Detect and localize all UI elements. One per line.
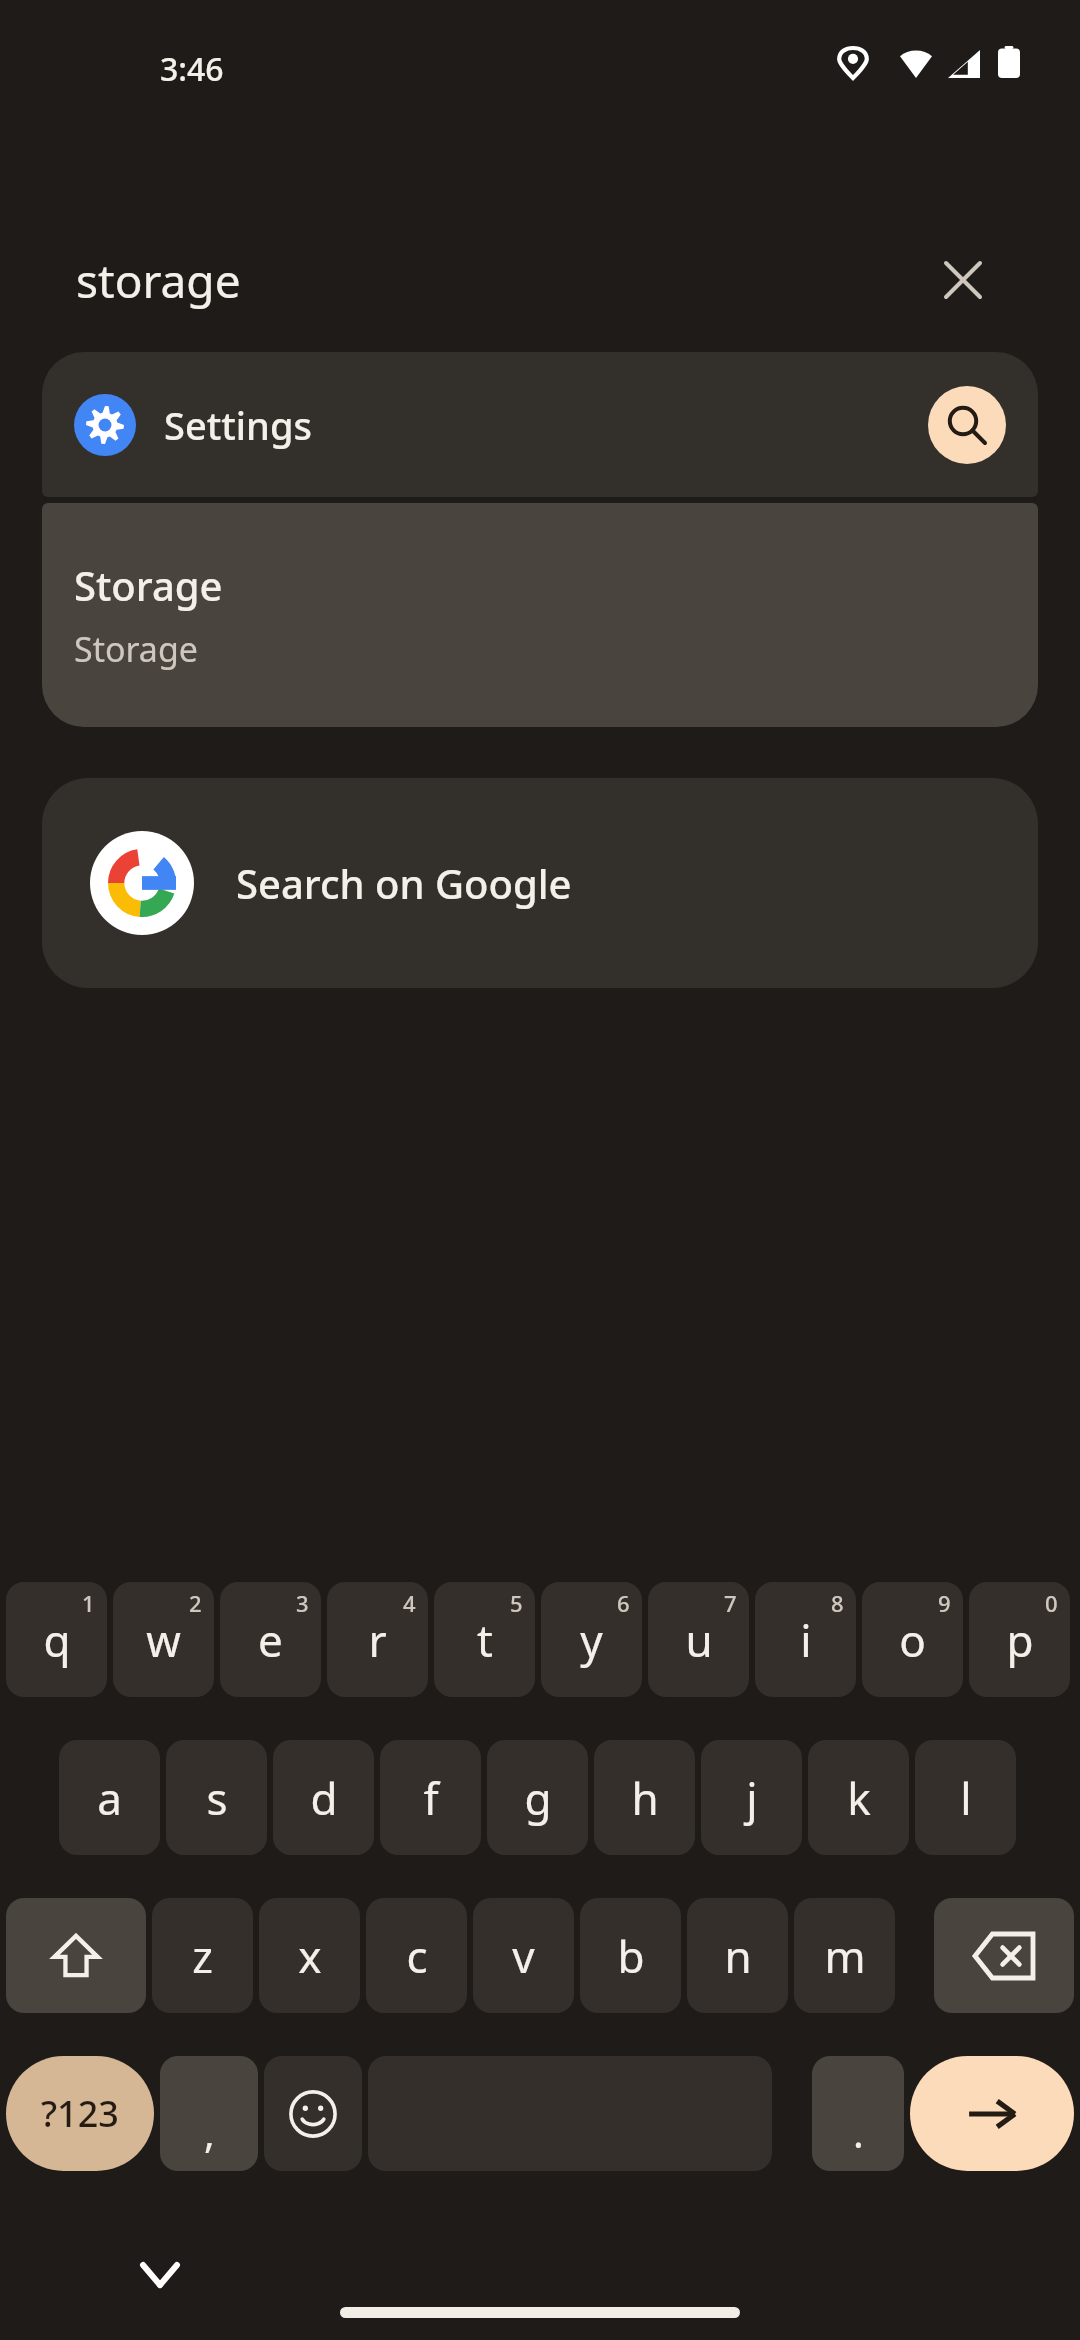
- staticText: a: [97, 1768, 122, 1828]
- button[interactable]: l: [915, 1740, 1016, 1855]
- button[interactable]: p: [969, 1582, 1070, 1697]
- button[interactable]: Search on Google: [42, 778, 1038, 988]
- staticText: m: [824, 1926, 866, 1986]
- button[interactable]: Shift: [6, 1898, 146, 2013]
- staticText: o: [899, 1610, 926, 1670]
- staticText: e: [258, 1610, 283, 1670]
- button[interactable]: x: [259, 1898, 360, 2013]
- staticText: 1: [82, 1588, 95, 1618]
- button[interactable]: Emoji: [264, 2056, 362, 2171]
- staticText: 3:46: [160, 47, 224, 91]
- staticText: 2: [189, 1588, 202, 1618]
- button[interactable]: d: [273, 1740, 374, 1855]
- staticText: Storage: [74, 626, 199, 672]
- button[interactable]: Settings: [42, 352, 1038, 497]
- staticText: t: [477, 1610, 493, 1670]
- staticText: s: [206, 1768, 228, 1828]
- button[interactable]: c: [366, 1898, 467, 2013]
- button[interactable]: Storage: [42, 503, 1038, 727]
- staticText: x: [298, 1926, 322, 1986]
- staticText: 6: [617, 1588, 630, 1618]
- staticText: Settings: [164, 399, 312, 451]
- button[interactable]: f: [380, 1740, 481, 1855]
- staticText: 4: [403, 1588, 416, 1618]
- staticText: h: [631, 1768, 659, 1828]
- staticText: i: [800, 1610, 812, 1670]
- staticText: 8: [831, 1588, 844, 1618]
- button[interactable]: a: [59, 1740, 160, 1855]
- staticText: storage: [76, 249, 241, 312]
- staticText: 9: [938, 1588, 951, 1618]
- staticText: f: [423, 1768, 439, 1828]
- button[interactable]: n: [687, 1898, 788, 2013]
- staticText: 0: [1045, 1588, 1058, 1618]
- staticText: 7: [724, 1588, 737, 1618]
- staticText: r: [368, 1610, 387, 1670]
- staticText: j: [746, 1768, 758, 1828]
- button[interactable]: Clear search: [930, 247, 996, 313]
- button[interactable]: j: [701, 1740, 802, 1855]
- button[interactable]: Backspace: [934, 1898, 1074, 2013]
- staticText: z: [192, 1926, 213, 1986]
- staticText: Search on Google: [236, 856, 572, 910]
- staticText: ,: [204, 2105, 215, 2159]
- button[interactable]: w: [113, 1582, 214, 1697]
- button[interactable]: q: [6, 1582, 107, 1697]
- staticText: Storage: [74, 558, 223, 612]
- staticText: p: [1006, 1610, 1034, 1670]
- staticText: 3: [296, 1588, 309, 1618]
- button[interactable]: m: [794, 1898, 895, 2013]
- button[interactable]: .: [812, 2056, 904, 2171]
- staticText: l: [960, 1768, 972, 1828]
- button[interactable]: Search: [910, 2056, 1074, 2171]
- staticText: k: [847, 1768, 871, 1828]
- button[interactable]: o: [862, 1582, 963, 1697]
- button[interactable]: Search in Settings: [928, 386, 1006, 464]
- staticText: ?123: [41, 2089, 119, 2138]
- button[interactable]: t: [434, 1582, 535, 1697]
- staticText: g: [524, 1768, 552, 1828]
- button[interactable]: h: [594, 1740, 695, 1855]
- button[interactable]: g: [487, 1740, 588, 1855]
- button[interactable]: k: [808, 1740, 909, 1855]
- staticText: v: [512, 1926, 535, 1986]
- staticText: 5: [510, 1588, 523, 1618]
- button[interactable]: e: [220, 1582, 321, 1697]
- staticText: d: [310, 1768, 338, 1828]
- staticText: u: [685, 1610, 713, 1670]
- staticText: c: [406, 1926, 428, 1986]
- button[interactable]: ?123: [6, 2056, 154, 2171]
- button[interactable]: u: [648, 1582, 749, 1697]
- button[interactable]: r: [327, 1582, 428, 1697]
- button[interactable]: Hide keyboard: [120, 2240, 200, 2310]
- button[interactable]: i: [755, 1582, 856, 1697]
- button[interactable]: z: [152, 1898, 253, 2013]
- button[interactable]: s: [166, 1740, 267, 1855]
- button[interactable]: ,: [160, 2056, 258, 2171]
- staticText: w: [146, 1610, 181, 1670]
- button[interactable]: y: [541, 1582, 642, 1697]
- staticText: b: [617, 1926, 645, 1986]
- staticText: y: [580, 1610, 603, 1670]
- staticText: q: [43, 1610, 71, 1670]
- button[interactable]: b: [580, 1898, 681, 2013]
- staticText: .: [853, 2105, 864, 2159]
- staticText: n: [724, 1926, 752, 1986]
- button[interactable]: v: [473, 1898, 574, 2013]
